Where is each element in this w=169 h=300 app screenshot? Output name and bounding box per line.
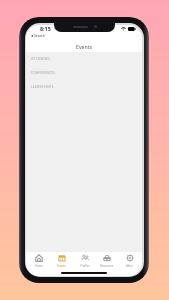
staticText: More xyxy=(126,264,133,268)
staticText: Home xyxy=(35,264,43,268)
staticText: LEADERSHIPS xyxy=(31,85,54,89)
staticText: Profiles xyxy=(80,264,90,268)
button[interactable]: Resources xyxy=(96,254,117,268)
button[interactable]: Events xyxy=(51,254,72,268)
button[interactable]: Search xyxy=(31,33,45,38)
staticText: Resources xyxy=(100,264,113,268)
staticText: Events xyxy=(57,264,66,268)
staticText: CONFERENCES xyxy=(31,71,56,75)
staticText: Search xyxy=(34,33,45,38)
button[interactable]: More xyxy=(119,254,140,268)
staticText: UPCOMING xyxy=(31,57,50,61)
staticText: Events xyxy=(76,43,93,50)
button[interactable]: Profiles xyxy=(74,254,95,268)
button[interactable]: UPCOMING xyxy=(26,52,142,66)
button[interactable]: Home xyxy=(28,254,49,268)
button[interactable]: CONFERENCES xyxy=(26,66,142,80)
button[interactable]: LEADERSHIPS xyxy=(26,80,142,94)
staticText: 8:15 xyxy=(40,25,51,32)
